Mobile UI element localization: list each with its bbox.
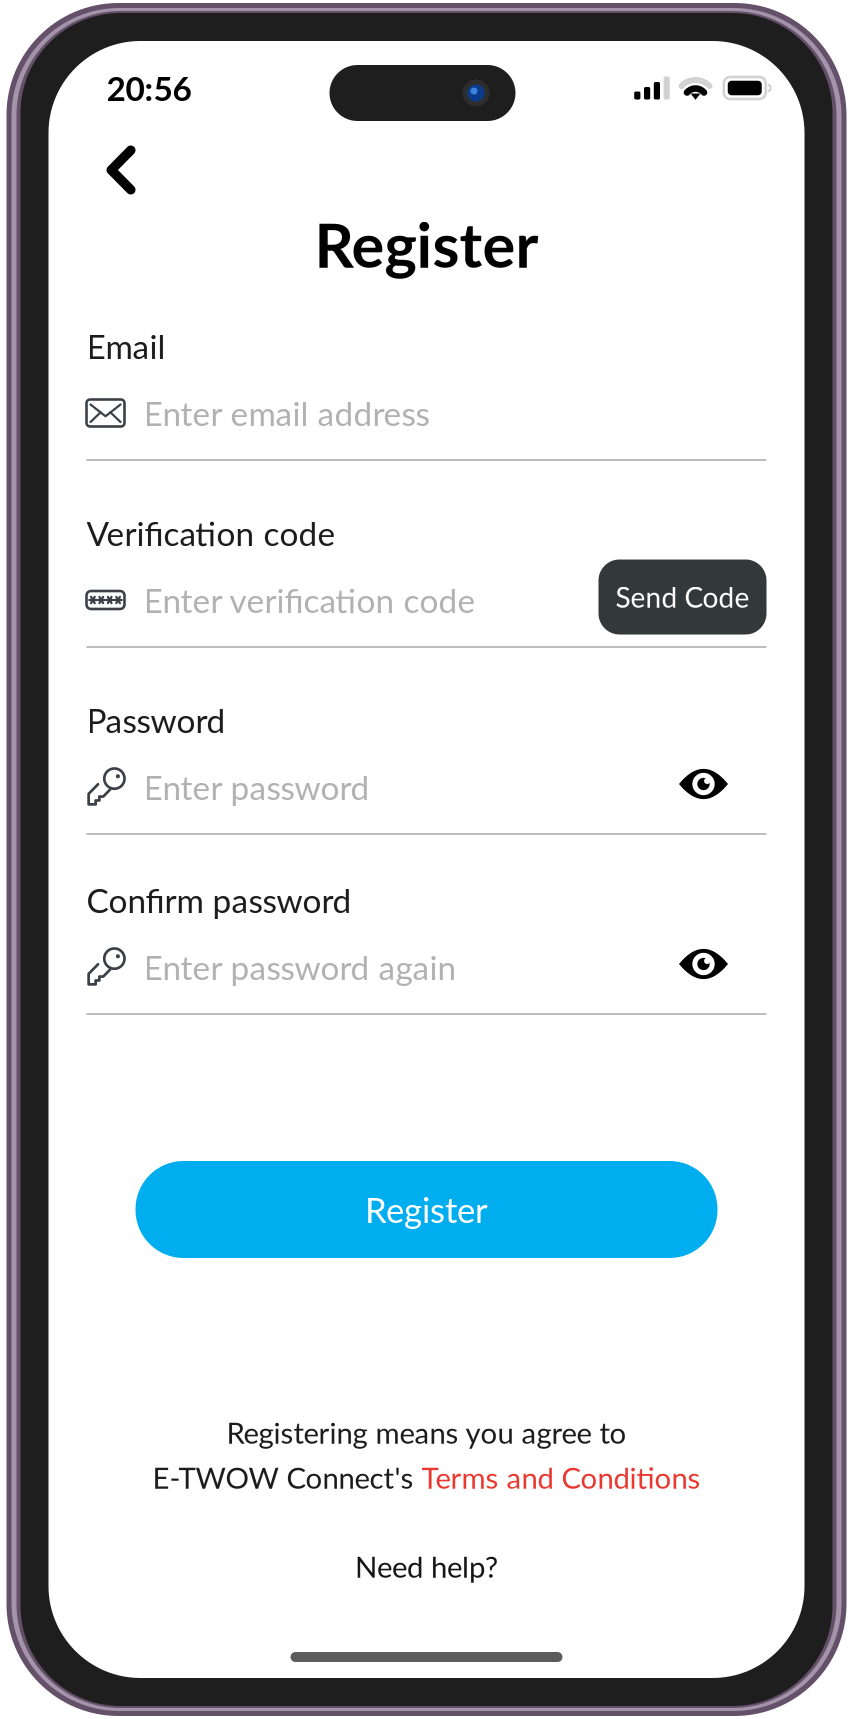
staticText: Enter email address <box>143 393 429 433</box>
staticText: 20:56 <box>106 68 191 108</box>
staticText: Register <box>365 1189 488 1230</box>
staticText: Need help? <box>355 1549 498 1584</box>
staticText: Enter password again <box>143 947 456 987</box>
button[interactable]: Back <box>92 114 149 200</box>
button[interactable]: Show password <box>668 761 766 813</box>
staticText: Password <box>86 700 225 740</box>
staticText: Register <box>314 207 538 281</box>
staticText: E-TWOW Connect's <box>152 1460 421 1495</box>
button[interactable]: Terms and Conditions <box>421 1460 700 1495</box>
staticText: Verification code <box>86 513 335 553</box>
staticText: Terms and Conditions <box>421 1460 700 1495</box>
staticText: Enter verification code <box>143 580 475 620</box>
button[interactable]: Register <box>135 1161 717 1258</box>
button[interactable]: Need help? <box>355 1551 498 1582</box>
staticText: Email <box>86 326 165 366</box>
staticText: Send Code <box>615 580 749 614</box>
button[interactable]: Send Code <box>598 559 766 640</box>
button[interactable]: Show confirm password <box>668 941 766 993</box>
staticText: Registering means you agree to <box>226 1415 626 1450</box>
staticText: Enter password <box>143 767 369 807</box>
staticText: Confirm password <box>86 880 351 920</box>
